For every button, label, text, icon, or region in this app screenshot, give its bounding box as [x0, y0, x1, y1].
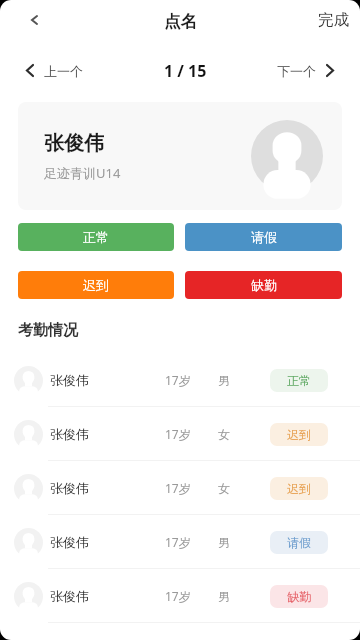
staticText: 缺勤 — [287, 589, 311, 604]
staticText: 完成 — [318, 10, 349, 30]
button[interactable]: Back — [0, 0, 56, 40]
staticText: 足迹青训U14 — [44, 164, 121, 182]
staticText: 女 — [218, 481, 230, 496]
staticText: 张俊伟 — [50, 372, 89, 388]
staticText: 迟到 — [287, 481, 311, 496]
staticText: 男 — [218, 373, 230, 388]
staticText: 张俊伟 — [50, 480, 89, 496]
staticText: 正常 — [287, 373, 311, 388]
staticText: 考勤情况 — [18, 321, 78, 340]
staticText: 缺勤 — [251, 277, 277, 293]
staticText: 迟到 — [287, 427, 311, 442]
staticText: 请假 — [251, 229, 277, 245]
button[interactable]: 请假 — [185, 223, 342, 251]
button[interactable]: 张俊伟 — [0, 515, 360, 569]
staticText: 17岁 — [165, 372, 191, 388]
staticText: 17岁 — [165, 534, 191, 550]
staticText: 女 — [218, 427, 230, 442]
button[interactable]: 张俊伟 — [0, 569, 360, 623]
button[interactable]: 张俊伟 — [0, 407, 360, 461]
button[interactable]: 缺勤 — [185, 271, 342, 299]
staticText: 张俊伟 — [44, 131, 104, 156]
staticText: 男 — [218, 535, 230, 550]
staticText: 迟到 — [83, 277, 109, 293]
button[interactable]: 张俊伟 — [0, 353, 360, 407]
staticText: 上一个 — [44, 63, 83, 79]
staticText: 请假 — [287, 535, 311, 550]
button[interactable]: 上一个 — [27, 40, 83, 101]
button[interactable]: 完成 — [318, 0, 349, 40]
staticText: 男 — [218, 589, 230, 604]
staticText: 17岁 — [165, 588, 191, 604]
staticText: 张俊伟 — [50, 534, 89, 550]
button[interactable]: 迟到 — [18, 271, 174, 299]
staticText: 正常 — [83, 229, 109, 245]
button[interactable]: 正常 — [18, 223, 174, 251]
button[interactable]: 张俊伟 — [0, 461, 360, 515]
button[interactable]: 下一个 — [277, 40, 333, 101]
staticText: 张俊伟 — [50, 426, 89, 442]
staticText: 1 / 15 — [164, 60, 207, 82]
staticText: 点名 — [164, 11, 197, 32]
staticText: 17岁 — [165, 480, 191, 496]
staticText: 17岁 — [165, 426, 191, 442]
staticText: 下一个 — [277, 63, 316, 79]
button[interactable]: 张俊伟 — [18, 102, 342, 210]
staticText: 张俊伟 — [50, 588, 89, 604]
